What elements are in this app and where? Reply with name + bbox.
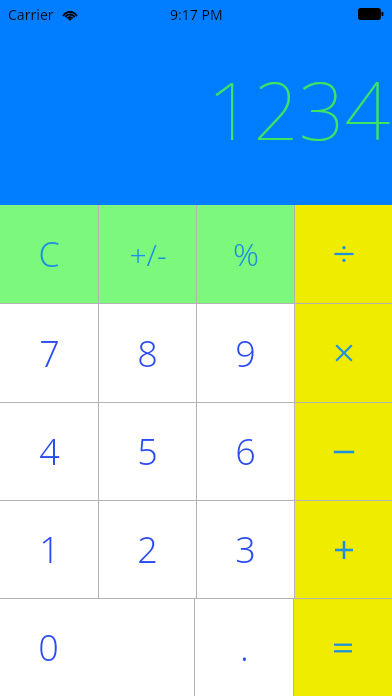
button[interactable]: Equals: [294, 599, 392, 696]
button[interactable]: Divide: [295, 205, 392, 303]
staticText: %: [233, 232, 259, 276]
staticText: 7: [39, 329, 60, 378]
button[interactable]: 3: [197, 501, 294, 598]
button[interactable]: Minus: [295, 403, 392, 500]
staticText: Carrier: [8, 5, 54, 24]
button[interactable]: 4: [0, 403, 98, 500]
staticText: +/-: [129, 234, 167, 275]
button[interactable]: Plus: [295, 501, 392, 598]
button[interactable]: +/-: [99, 205, 196, 303]
staticText: 2: [137, 525, 158, 574]
staticText: 9:17 PM: [170, 5, 223, 24]
staticText: 1: [39, 525, 60, 574]
button[interactable]: 9: [197, 304, 294, 402]
button[interactable]: %: [197, 205, 294, 303]
staticText: 6: [235, 427, 256, 476]
button[interactable]: Multiply: [295, 304, 392, 402]
staticText: 3: [235, 525, 256, 574]
button[interactable]: 7: [0, 304, 98, 402]
staticText: 1234: [207, 54, 390, 163]
button[interactable]: .: [195, 599, 293, 696]
staticText: 4: [39, 427, 60, 476]
button[interactable]: 5: [99, 403, 196, 500]
staticText: .: [240, 623, 249, 672]
button[interactable]: 8: [99, 304, 196, 402]
staticText: 5: [137, 427, 158, 476]
button[interactable]: 1: [0, 501, 98, 598]
button[interactable]: 2: [99, 501, 196, 598]
staticText: C: [38, 231, 60, 277]
button[interactable]: C: [0, 205, 98, 303]
staticText: 8: [137, 329, 158, 378]
staticText: 0: [38, 623, 59, 672]
button[interactable]: 0: [0, 599, 194, 696]
staticText: 9: [235, 329, 256, 378]
button[interactable]: 6: [197, 403, 294, 500]
